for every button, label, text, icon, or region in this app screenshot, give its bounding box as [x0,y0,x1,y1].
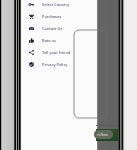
staticText: Tell your friend [42,50,71,55]
staticText: Privacy Policy [42,62,68,67]
button[interactable]: Rate us [22,34,96,46]
button[interactable]: Tell your friend [22,46,96,58]
staticText: Purchases [42,14,62,19]
staticText: rt Now [97,132,109,137]
button[interactable]: Purchases [22,10,96,22]
staticText: Rate us [42,38,56,43]
button[interactable]: Select Country [22,0,96,10]
button[interactable]: Contact Us [22,22,96,34]
button[interactable]: rt Now [94,130,113,139]
staticText: Contact Us [42,26,63,31]
staticText: Select Country [42,2,70,7]
button[interactable]: Privacy Policy [22,58,96,70]
